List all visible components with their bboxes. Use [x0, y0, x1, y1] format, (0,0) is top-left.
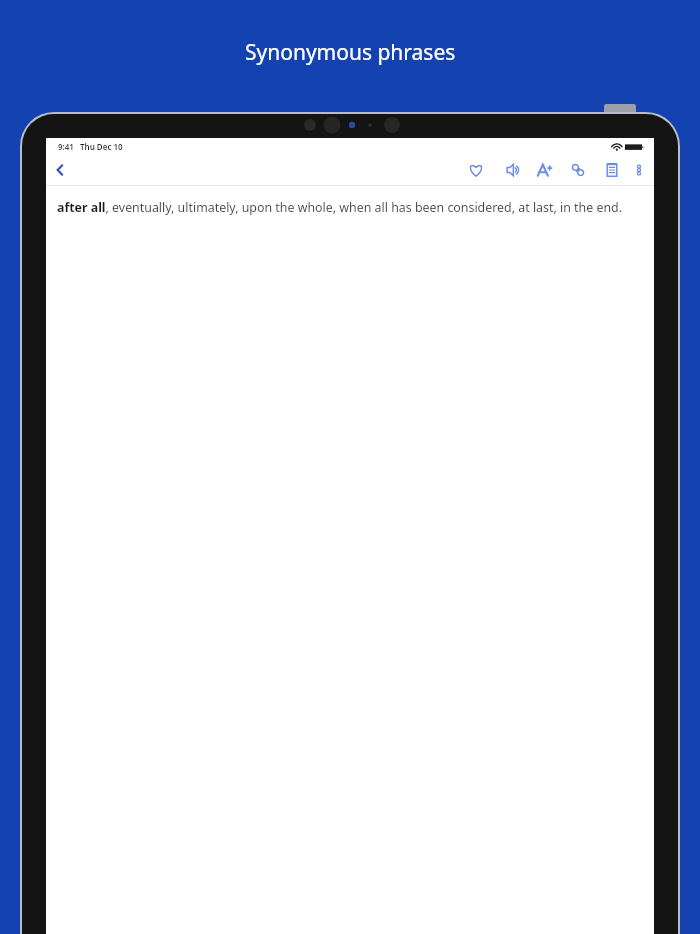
button[interactable]: Text size: [532, 158, 556, 182]
button[interactable]: More options: [630, 161, 648, 179]
button[interactable]: Link: [566, 158, 590, 182]
staticText: Synonymous phrases: [245, 38, 456, 67]
button[interactable]: Back: [46, 156, 74, 184]
button[interactable]: Pronounce: [498, 158, 522, 182]
staticText: Thu Dec 10: [80, 141, 123, 152]
button[interactable]: Favorite: [464, 158, 488, 182]
staticText: after all, eventually, ultimately, upon …: [57, 199, 622, 216]
button[interactable]: Notes: [600, 158, 624, 182]
staticText: 9:41: [58, 141, 74, 152]
